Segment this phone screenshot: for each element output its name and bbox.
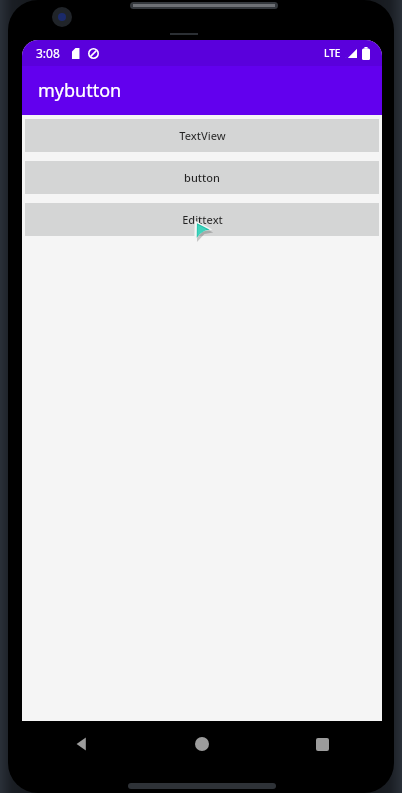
staticText: TextView — [179, 128, 226, 143]
button[interactable]: Back — [22, 721, 142, 767]
staticText: Edittext — [182, 212, 223, 227]
staticText: mybutton — [38, 78, 122, 103]
button[interactable]: Home — [142, 721, 262, 767]
button[interactable]: Edittext — [25, 203, 379, 236]
staticText: 3:08 — [36, 45, 60, 61]
button[interactable]: Recents — [262, 721, 382, 767]
staticText: LTE — [324, 46, 341, 60]
button[interactable]: button — [25, 161, 379, 194]
staticText: button — [184, 170, 220, 185]
button[interactable]: TextView — [25, 119, 379, 152]
